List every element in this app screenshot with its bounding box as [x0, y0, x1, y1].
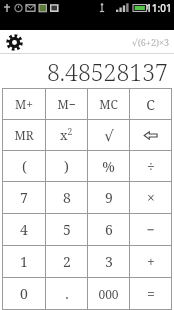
- button[interactable]: 8: [46, 182, 87, 213]
- staticText: MC: [99, 96, 118, 112]
- button[interactable]: ÷: [130, 151, 171, 181]
- staticText: %: [102, 157, 115, 176]
- button[interactable]: MR: [3, 120, 45, 150]
- button[interactable]: 9: [88, 182, 129, 213]
- button[interactable]: 7: [3, 182, 45, 213]
- button[interactable]: 6: [88, 214, 129, 245]
- button[interactable]: (: [3, 151, 45, 181]
- button[interactable]: 2: [46, 246, 87, 277]
- staticText: 1: [20, 252, 28, 271]
- staticText: √(6+2)×3: [132, 36, 170, 48]
- staticText: x2: [60, 126, 73, 144]
- staticText: 6: [105, 220, 113, 239]
- staticText: ÷: [147, 157, 155, 176]
- button[interactable]: =: [130, 278, 171, 309]
- button[interactable]: 3: [88, 246, 129, 277]
- staticText: MR: [14, 127, 34, 143]
- staticText: .: [65, 284, 69, 303]
- staticText: 9: [105, 188, 113, 207]
- button[interactable]: ): [46, 151, 87, 181]
- staticText: C: [146, 95, 155, 114]
- button[interactable]: C: [130, 89, 171, 119]
- button[interactable]: 1: [3, 246, 45, 277]
- button[interactable]: M−: [46, 89, 87, 119]
- button[interactable]: M+: [3, 89, 45, 119]
- staticText: −: [146, 220, 155, 239]
- staticText: 3: [105, 252, 113, 271]
- staticText: 2: [63, 252, 71, 271]
- button[interactable]: Backspace: [130, 120, 171, 150]
- button[interactable]: ×: [130, 182, 171, 213]
- staticText: 5: [63, 220, 71, 239]
- staticText: 8.48528137: [47, 56, 168, 87]
- button[interactable]: %: [88, 151, 129, 181]
- button[interactable]: .: [46, 278, 87, 309]
- button[interactable]: Settings: [4, 32, 24, 52]
- button[interactable]: 000: [88, 278, 129, 309]
- button[interactable]: MC: [88, 89, 129, 119]
- staticText: 000: [98, 286, 119, 302]
- button[interactable]: 5: [46, 214, 87, 245]
- staticText: +: [147, 252, 155, 271]
- staticText: 11:01: [146, 1, 172, 15]
- button[interactable]: 4: [3, 214, 45, 245]
- staticText: M+: [15, 96, 33, 112]
- button[interactable]: +: [130, 246, 171, 277]
- button[interactable]: −: [130, 214, 171, 245]
- staticText: 0: [20, 284, 28, 303]
- staticText: 4: [20, 220, 28, 239]
- staticText: √: [104, 127, 114, 144]
- button[interactable]: √: [88, 120, 129, 150]
- staticText: M−: [57, 96, 76, 112]
- staticText: ×: [147, 188, 155, 207]
- button[interactable]: x2: [46, 120, 87, 150]
- staticText: 7: [20, 188, 28, 207]
- staticText: =: [147, 284, 155, 303]
- staticText: 8: [63, 188, 71, 207]
- staticText: (: [22, 157, 27, 176]
- staticText: ): [64, 157, 69, 176]
- button[interactable]: 0: [3, 278, 45, 309]
